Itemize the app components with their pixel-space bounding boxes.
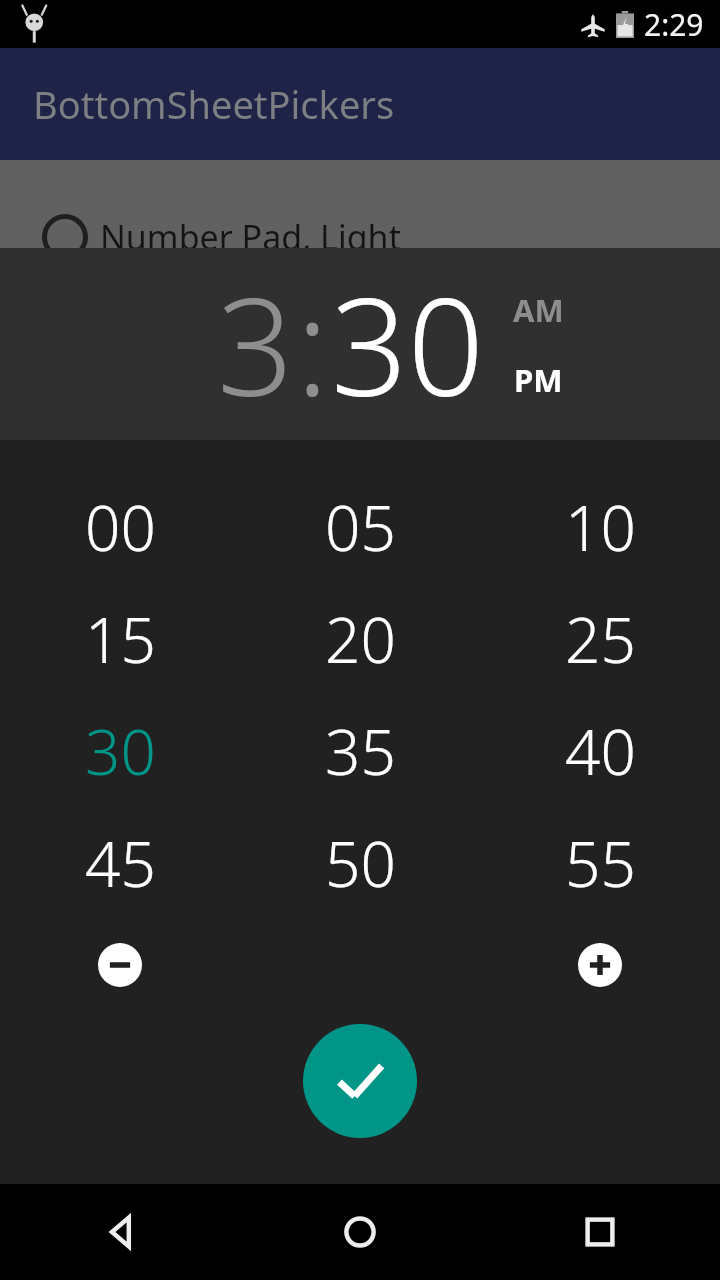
button[interactable]: 40 xyxy=(480,695,720,807)
button[interactable]: 05 xyxy=(240,471,480,583)
staticText: 05 xyxy=(325,485,396,569)
staticText: 25 xyxy=(565,597,636,681)
button[interactable]: 30 xyxy=(0,695,240,807)
button[interactable]: Increment xyxy=(578,943,622,987)
staticText: 40 xyxy=(565,709,636,793)
staticText: 50 xyxy=(325,821,396,905)
button[interactable]: 10 xyxy=(480,471,720,583)
staticText: 35 xyxy=(325,709,396,793)
staticText: 30 xyxy=(331,253,485,436)
button[interactable]: Home xyxy=(240,1184,480,1280)
staticText: 45 xyxy=(85,821,156,905)
button[interactable]: 15 xyxy=(0,583,240,695)
button[interactable]: Back xyxy=(0,1184,240,1280)
button[interactable]: 45 xyxy=(0,807,240,919)
staticText: 00 xyxy=(85,485,156,569)
staticText: 30 xyxy=(85,709,156,793)
button[interactable]: 50 xyxy=(240,807,480,919)
staticText: : xyxy=(296,253,329,436)
staticText: BottomSheetPickers xyxy=(33,78,395,130)
staticText: 10 xyxy=(565,485,636,569)
staticText: 2:29 xyxy=(644,4,704,45)
staticText: AM xyxy=(513,289,564,331)
staticText: 20 xyxy=(325,597,396,681)
button[interactable]: 25 xyxy=(480,583,720,695)
staticText: PM xyxy=(514,359,563,401)
staticText: Number Pad, Light xyxy=(100,214,401,260)
button[interactable]: 30 xyxy=(331,253,485,436)
staticText: 3 xyxy=(217,253,294,436)
button[interactable]: 55 xyxy=(480,807,720,919)
staticText: 55 xyxy=(565,821,636,905)
button[interactable]: 35 xyxy=(240,695,480,807)
button[interactable]: 3 xyxy=(217,253,294,436)
button[interactable]: Confirm time xyxy=(303,1024,417,1138)
button[interactable]: PM xyxy=(508,356,569,404)
button[interactable]: Decrement xyxy=(98,943,142,987)
staticText: 15 xyxy=(85,597,156,681)
button[interactable]: 00 xyxy=(0,471,240,583)
button[interactable]: 20 xyxy=(240,583,480,695)
button[interactable]: Recent apps xyxy=(480,1184,720,1280)
button[interactable]: AM xyxy=(507,286,570,334)
